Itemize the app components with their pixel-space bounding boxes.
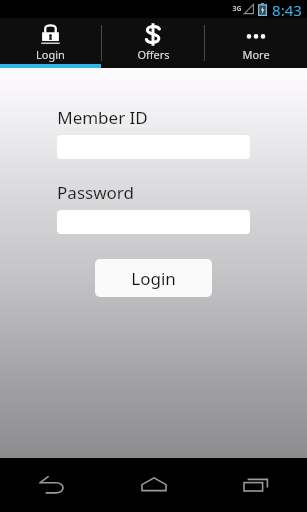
button[interactable]: Home [103, 458, 205, 512]
button[interactable]: Back [0, 458, 103, 512]
other: More [243, 24, 269, 44]
staticText: Password [57, 181, 134, 204]
staticText: Offers [137, 47, 170, 62]
button[interactable]: More [205, 18, 307, 68]
button[interactable]: Login [95, 259, 212, 297]
staticText: 3G [232, 4, 242, 14]
other: Offers [143, 23, 163, 46]
other: Login [40, 23, 61, 45]
staticText: Login [131, 267, 176, 290]
staticText: More [242, 47, 270, 62]
staticText: 8:43 [272, 0, 302, 18]
staticText: Member ID [57, 106, 148, 129]
button[interactable]: Recent apps [205, 458, 307, 512]
button[interactable]: Offers [102, 18, 204, 68]
staticText: Login [36, 47, 65, 62]
button[interactable]: Login [0, 18, 101, 68]
